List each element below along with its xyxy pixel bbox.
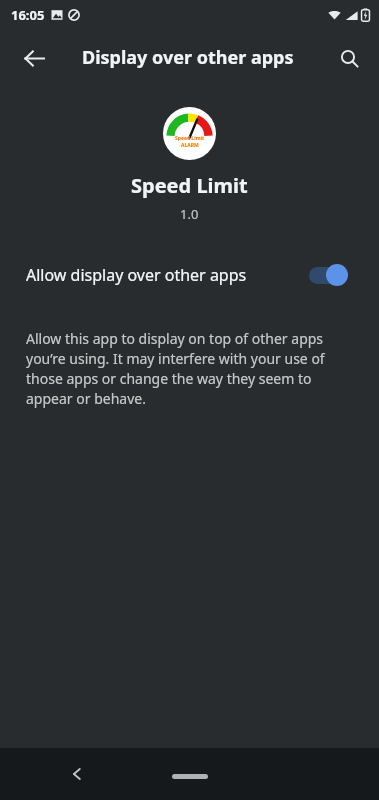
staticText: ALARM bbox=[181, 142, 199, 149]
button[interactable]: Home bbox=[172, 774, 208, 779]
button[interactable]: Search bbox=[325, 34, 373, 82]
staticText: Allow this app to display on top of othe… bbox=[26, 329, 353, 408]
staticText: 1.0 bbox=[180, 205, 199, 223]
staticText: Speed Limit bbox=[131, 172, 248, 199]
staticText: Speed Limit bbox=[175, 135, 205, 142]
staticText: 16:05 bbox=[11, 6, 45, 24]
staticText: Display over other apps bbox=[82, 45, 294, 70]
button[interactable]: Back bbox=[10, 34, 58, 82]
staticText: Allow display over other apps bbox=[26, 264, 247, 286]
button[interactable]: Back bbox=[55, 752, 99, 796]
button[interactable]: Allow display over other apps bbox=[0, 249, 379, 301]
